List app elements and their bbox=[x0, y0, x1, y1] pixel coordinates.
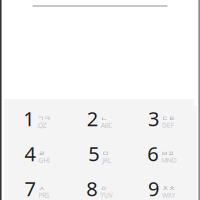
staticText: 2 bbox=[87, 105, 98, 132]
staticText: 8 bbox=[86, 175, 97, 200]
staticText: ㄴ bbox=[101, 114, 108, 123]
staticText: 5 bbox=[88, 140, 99, 167]
staticText: ㅁ bbox=[102, 149, 109, 158]
staticText: 6 bbox=[147, 140, 158, 167]
staticText: 3 bbox=[148, 105, 159, 132]
button[interactable]: 8 bbox=[68, 171, 131, 200]
button[interactable]: 5 bbox=[68, 136, 131, 171]
staticText: ㄱㅋ bbox=[37, 114, 51, 123]
button[interactable]: 6 bbox=[131, 136, 193, 171]
staticText: 7 bbox=[24, 175, 35, 200]
button[interactable]: 7 bbox=[6, 171, 68, 200]
staticText: ㅇ bbox=[100, 184, 107, 193]
staticText: WXY bbox=[162, 191, 175, 200]
button[interactable]: 4 bbox=[6, 136, 68, 171]
staticText: TUV bbox=[100, 191, 113, 200]
staticText: DEF bbox=[162, 121, 173, 130]
staticText: ㅈㅊ bbox=[162, 184, 176, 193]
staticText: ABC bbox=[101, 121, 112, 130]
staticText: GHI bbox=[38, 156, 50, 165]
staticText: 9 bbox=[148, 175, 159, 200]
button[interactable]: 9 bbox=[131, 171, 193, 200]
staticText: ㅅ bbox=[38, 184, 45, 193]
staticText: ㄷㅌ bbox=[162, 114, 176, 123]
staticText: .QZ bbox=[37, 121, 47, 130]
staticText: JKL bbox=[102, 156, 111, 165]
staticText: ㅂㅍ bbox=[161, 149, 175, 158]
button[interactable]: 3 bbox=[131, 101, 193, 136]
staticText: 4 bbox=[24, 140, 35, 167]
staticText: MNO bbox=[161, 156, 176, 165]
staticText: 1 bbox=[23, 105, 34, 132]
staticText: ㄹ bbox=[38, 149, 45, 158]
button[interactable]: 1 bbox=[6, 101, 68, 136]
button[interactable]: 2 bbox=[68, 101, 131, 136]
staticText: PRS bbox=[38, 191, 50, 200]
